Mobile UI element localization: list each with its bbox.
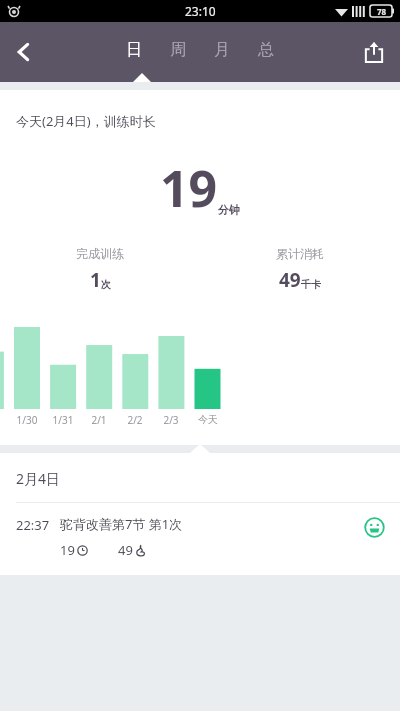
staticText: 今天 [190,413,226,426]
other: Mood [362,515,386,539]
button[interactable]: Back [0,28,48,76]
staticText: 驼背改善第7节 第1次 [60,515,183,533]
staticText: 2/1 [81,413,117,427]
staticText: 总 [258,40,274,60]
staticText: 完成训练 [76,246,124,261]
button[interactable]: 22:37 [0,503,400,573]
staticText: 2/2 [117,413,153,427]
staticText: 次 [101,278,111,291]
staticText: 49 [118,541,133,559]
staticText: 千卡 [301,278,321,291]
staticText: 周 [170,40,186,60]
staticText: 累计消耗 [276,246,324,261]
button[interactable]: 月 [200,28,244,72]
staticText: 2月4日 [16,469,61,488]
staticText: 1/30 [9,413,45,427]
button[interactable]: 总 [244,28,288,72]
staticText: 22:37 [16,516,50,534]
staticText: 23:10 [185,3,216,19]
staticText: 78 [377,6,387,17]
staticText: 1 [90,267,101,293]
staticText: 19 [60,541,75,559]
staticText: 1/31 [45,413,81,427]
button[interactable]: 日 [112,28,156,72]
staticText: 日 [126,40,142,60]
staticText: 月 [214,40,230,60]
staticText: 今天(2月4日)，训练时长 [16,112,156,130]
staticText: 19 [160,154,218,222]
staticText: 2/3 [153,413,189,427]
staticText: 49 [279,267,301,293]
button[interactable]: Share [348,26,400,78]
button[interactable]: 周 [156,28,200,72]
staticText: 分钟 [218,203,240,217]
